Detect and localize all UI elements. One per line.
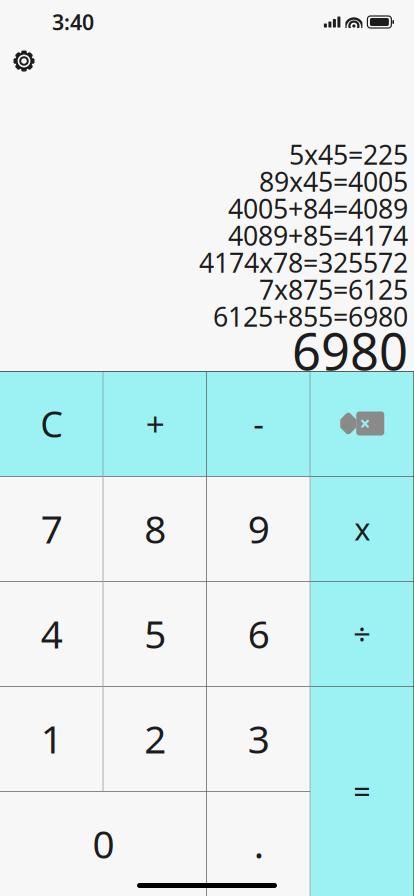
staticText: 4174x78=325572 [199, 245, 408, 280]
staticText: 1 [41, 713, 63, 764]
staticText: 4005+84=4089 [228, 191, 408, 226]
staticText: 8 [144, 503, 166, 554]
staticText: 3:40 [52, 8, 94, 36]
staticText: 6 [248, 608, 270, 659]
button[interactable]: 5 [103, 581, 207, 686]
button[interactable]: Minus [207, 371, 310, 476]
button[interactable]: Clear [0, 371, 103, 476]
staticText: - [253, 401, 264, 446]
staticText: 4 [41, 608, 63, 659]
button[interactable]: 1 [0, 686, 103, 791]
button[interactable]: 3 [207, 686, 310, 791]
staticText: + [146, 401, 165, 446]
button[interactable]: 8 [103, 476, 207, 581]
staticText: C [40, 400, 63, 447]
staticText: 4089+85=4174 [228, 218, 408, 253]
staticText: = [353, 771, 371, 811]
button[interactable]: Backspace [310, 371, 414, 476]
staticText: 3 [248, 713, 270, 764]
button[interactable]: Settings [7, 44, 41, 78]
button[interactable]: 9 [207, 476, 310, 581]
staticText: 5 [144, 608, 166, 659]
staticText: 9 [248, 503, 270, 554]
staticText: . [254, 818, 264, 869]
button[interactable]: 0 [0, 791, 207, 896]
staticText: x [354, 508, 370, 549]
staticText: 7 [41, 503, 63, 554]
button[interactable]: Equals [310, 686, 414, 896]
button[interactable]: 7 [0, 476, 103, 581]
button[interactable]: Multiply [310, 476, 414, 581]
button[interactable]: 4 [0, 581, 103, 686]
staticText: 6125+855=6980 [213, 299, 408, 334]
button[interactable]: Decimal point [207, 791, 310, 896]
staticText: 89x45=4005 [259, 164, 408, 199]
button[interactable]: Plus [103, 371, 207, 476]
staticText: 5x45=225 [289, 137, 408, 172]
staticText: ÷ [353, 613, 371, 654]
staticText: × [360, 411, 371, 436]
staticText: 2 [144, 713, 166, 764]
staticText: 6980 [292, 317, 408, 384]
button[interactable]: Divide [310, 581, 414, 686]
staticText: 0 [92, 818, 114, 869]
button[interactable]: 6 [207, 581, 310, 686]
staticText: 7x875=6125 [259, 272, 408, 307]
button[interactable]: 2 [103, 686, 207, 791]
